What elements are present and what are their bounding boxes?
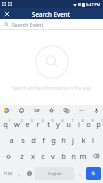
button[interactable]: g [48,132,58,148]
staticText: GIF [34,108,40,113]
button[interactable]: y [53,116,63,132]
staticText: c [41,151,45,161]
staticText: q [3,119,8,129]
button[interactable]: Search [86,167,101,180]
staticText: p [96,119,101,129]
staticText: y [56,119,60,129]
button[interactable]: c [38,148,48,164]
button[interactable]: more [78,107,85,114]
button[interactable]: translate [63,107,70,114]
button[interactable]: d [28,132,38,148]
button[interactable]: Close [0,8,14,19]
staticText: g [51,135,56,145]
button[interactable]: Period [75,166,85,181]
button[interactable]: Search Event [0,19,103,29]
staticText: 9 [91,118,94,123]
button[interactable]: Google [3,107,10,114]
staticText: Search Event [12,21,44,28]
staticText: 2 [20,118,23,123]
staticText: English [48,171,62,176]
staticText: 6:47 PM [86,2,101,7]
staticText: b [61,151,66,161]
staticText: Search Event [32,10,71,18]
staticText: 1 [8,118,11,123]
button[interactable]: mic [93,107,100,114]
staticText: 6 [61,118,64,123]
button[interactable]: e [22,116,33,132]
button[interactable]: w [11,116,22,132]
staticText: n [71,151,76,161]
staticText: s [21,135,25,145]
button[interactable]: j [68,132,78,148]
staticText: l [92,135,94,145]
staticText: r [36,119,40,129]
button[interactable]: Shift [0,148,16,164]
button[interactable]: k [78,132,88,148]
staticText: x [31,151,35,161]
staticText: t [47,119,50,129]
button[interactable]: l [88,132,98,148]
button[interactable]: p [93,116,103,132]
button[interactable]: a [6,132,17,148]
staticText: h [61,135,66,145]
button[interactable]: r [33,116,43,132]
button[interactable]: q [0,116,11,132]
button[interactable]: z [16,148,27,164]
staticText: ?123 [3,171,13,177]
staticText: 0 [101,118,103,123]
staticText: 7 [71,118,74,123]
button[interactable]: Backspace [88,148,103,164]
button[interactable]: n [68,148,78,164]
button[interactable]: i [73,116,83,132]
button[interactable]: m [78,148,88,164]
staticText: m [79,151,87,161]
button[interactable]: x [27,148,38,164]
staticText: 5 [51,118,54,123]
staticText: 8 [81,118,84,123]
button[interactable]: English [35,167,74,180]
button[interactable]: h [58,132,68,148]
button[interactable]: ?123 [1,166,14,181]
staticText: z [20,151,24,161]
button[interactable]: Comma [14,166,24,181]
staticText: w [14,119,20,129]
staticText: o [86,119,91,129]
staticText: Search all the information in the app [12,85,91,91]
staticText: , [18,170,20,178]
button[interactable]: v [48,148,58,164]
button[interactable]: s [17,132,28,148]
staticText: e [25,119,30,129]
staticText: 3 [30,118,33,123]
staticText: v [51,151,55,161]
button[interactable]: o [83,116,93,132]
staticText: d [31,135,36,145]
button[interactable]: emoji [18,107,25,114]
staticText: k [81,135,86,145]
staticText: a [9,135,14,145]
staticText: j [72,135,74,145]
button[interactable]: f [38,132,48,148]
button[interactable]: b [58,148,68,164]
button[interactable]: Change language [24,166,34,181]
staticText: f [42,135,45,145]
button[interactable]: settings [48,107,55,114]
button[interactable]: u [63,116,73,132]
staticText: . [79,170,81,178]
button[interactable]: t [43,116,53,132]
staticText: 4 [41,118,44,123]
staticText: ••• [79,108,84,113]
button[interactable]: gif [33,107,40,114]
staticText: i [78,119,80,129]
staticText: u [66,119,71,129]
